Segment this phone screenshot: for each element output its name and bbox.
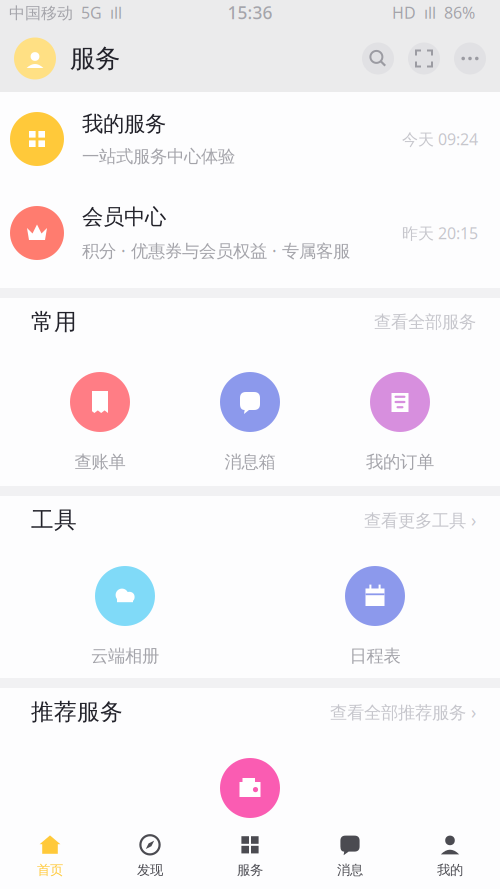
button[interactable]: More xyxy=(454,42,486,74)
staticText: 推荐服务 xyxy=(31,698,123,726)
staticText: 昨天 20:15 xyxy=(402,222,478,244)
staticText: 消息 xyxy=(337,862,363,878)
button[interactable]: 发现 xyxy=(100,826,200,885)
staticText: 消息箱 xyxy=(224,451,275,473)
staticText: 会员中心 xyxy=(82,204,166,230)
button[interactable]: 会员中心 xyxy=(0,186,500,280)
button[interactable]: 首页 xyxy=(0,826,100,885)
button[interactable]: 云端相册 xyxy=(0,566,250,665)
staticText: 查看全部推荐服务 › xyxy=(330,700,476,723)
staticText: 发现 xyxy=(137,862,163,878)
staticText: HD ıll 86% xyxy=(392,2,475,23)
staticText: 一站式服务中心体验 xyxy=(82,146,235,167)
staticText: 中国移动 5G ıll xyxy=(9,2,122,23)
staticText: 服务 xyxy=(237,862,263,878)
button[interactable]: 查看更多工具 › xyxy=(364,508,476,531)
staticText: 云端相册 xyxy=(91,645,159,667)
staticText: 常用 xyxy=(31,308,77,336)
button[interactable]: 我的订单 xyxy=(325,372,475,471)
staticText: 日程表 xyxy=(349,645,400,667)
staticText: 积分 · 优惠券与会员权益 · 专属客服 xyxy=(82,239,350,262)
button[interactable]: Search xyxy=(362,42,394,74)
button[interactable]: 日程表 xyxy=(250,566,500,665)
staticText: 查账单 xyxy=(74,451,125,473)
button[interactable]: 查账单 xyxy=(25,372,175,471)
staticText: 首页 xyxy=(37,862,63,878)
button[interactable]: 消息箱 xyxy=(175,372,325,471)
button[interactable]: 服务 xyxy=(200,826,300,885)
button[interactable]: 生活缴费 xyxy=(175,758,325,857)
staticText: 服务 xyxy=(70,43,120,74)
staticText: 我的服务 xyxy=(82,111,166,137)
staticText: 我的 xyxy=(437,862,463,878)
staticText: 今天 09:24 xyxy=(402,128,478,150)
button[interactable]: Scan xyxy=(408,42,440,74)
staticText: 我的订单 xyxy=(366,451,434,473)
button[interactable]: 我的 xyxy=(400,826,500,885)
staticText: 查看更多工具 › xyxy=(364,508,476,531)
staticText: 15:36 xyxy=(227,1,272,24)
button[interactable]: 我的服务 xyxy=(0,92,500,186)
button[interactable]: 查看全部服务 xyxy=(374,311,476,333)
button[interactable]: 消息 xyxy=(300,826,400,885)
staticText: 生活缴费 xyxy=(216,837,284,859)
staticText: 查看全部服务 xyxy=(374,311,476,333)
staticText: 工具 xyxy=(31,506,77,534)
button[interactable]: 查看全部推荐服务 › xyxy=(330,700,476,723)
